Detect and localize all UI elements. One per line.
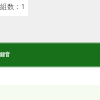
- button[interactable]: 組数：1: [0, 0, 28, 16]
- staticText: 録音: [0, 51, 10, 57]
- staticText: 組数：1: [0, 2, 26, 12]
- button[interactable]: 録音: [0, 42, 100, 66]
